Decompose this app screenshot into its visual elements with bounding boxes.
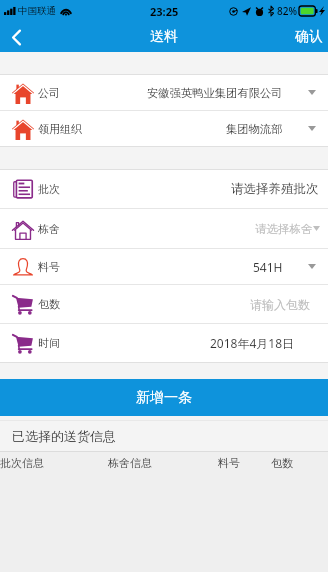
staticText: 时间 — [38, 336, 60, 350]
button[interactable]: 新增一条 — [0, 379, 328, 416]
staticText: 批次 — [38, 182, 60, 196]
button[interactable]: 时间 — [0, 324, 328, 362]
staticText: 541H — [253, 259, 283, 275]
staticText: 2018年4月18日 — [210, 335, 295, 351]
staticText: 包数 — [38, 297, 60, 311]
button[interactable]: 公司 — [0, 75, 328, 110]
button[interactable]: 料号 — [0, 249, 328, 284]
staticText: 请选择栋舍 — [255, 222, 313, 236]
staticText: 请输入包数 — [250, 297, 310, 312]
staticText: 料号 — [38, 260, 60, 274]
button[interactable]: 确认 — [290, 22, 328, 52]
staticText: 新增一条 — [136, 389, 192, 407]
staticText: 公司 — [38, 86, 60, 100]
button[interactable]: 栋舍 — [0, 209, 328, 248]
button[interactable]: 领用组织 — [0, 111, 328, 146]
staticText: 中国联通 — [18, 5, 56, 17]
staticText: 23:25 — [150, 4, 179, 19]
staticText: 已选择的送货信息 — [12, 428, 116, 444]
staticText: 82% — [277, 4, 297, 18]
staticText: 料号 — [218, 456, 240, 470]
button[interactable]: 返回 — [0, 22, 32, 52]
staticText: 栋舍信息 — [108, 456, 152, 470]
staticText: 包数 — [271, 456, 293, 470]
staticText: 安徽强英鸭业集团有限公司 — [147, 86, 283, 100]
staticText: 请选择养殖批次 — [231, 181, 319, 197]
staticText: 送料 — [150, 28, 178, 46]
staticText: 确认 — [295, 28, 323, 46]
staticText: 栋舍 — [38, 222, 60, 236]
staticText: 批次信息 — [0, 456, 44, 470]
button[interactable]: 批次 — [0, 170, 328, 208]
button[interactable]: 包数 — [0, 285, 328, 323]
staticText: 集团物流部 — [226, 122, 283, 136]
staticText: 领用组织 — [38, 122, 82, 136]
